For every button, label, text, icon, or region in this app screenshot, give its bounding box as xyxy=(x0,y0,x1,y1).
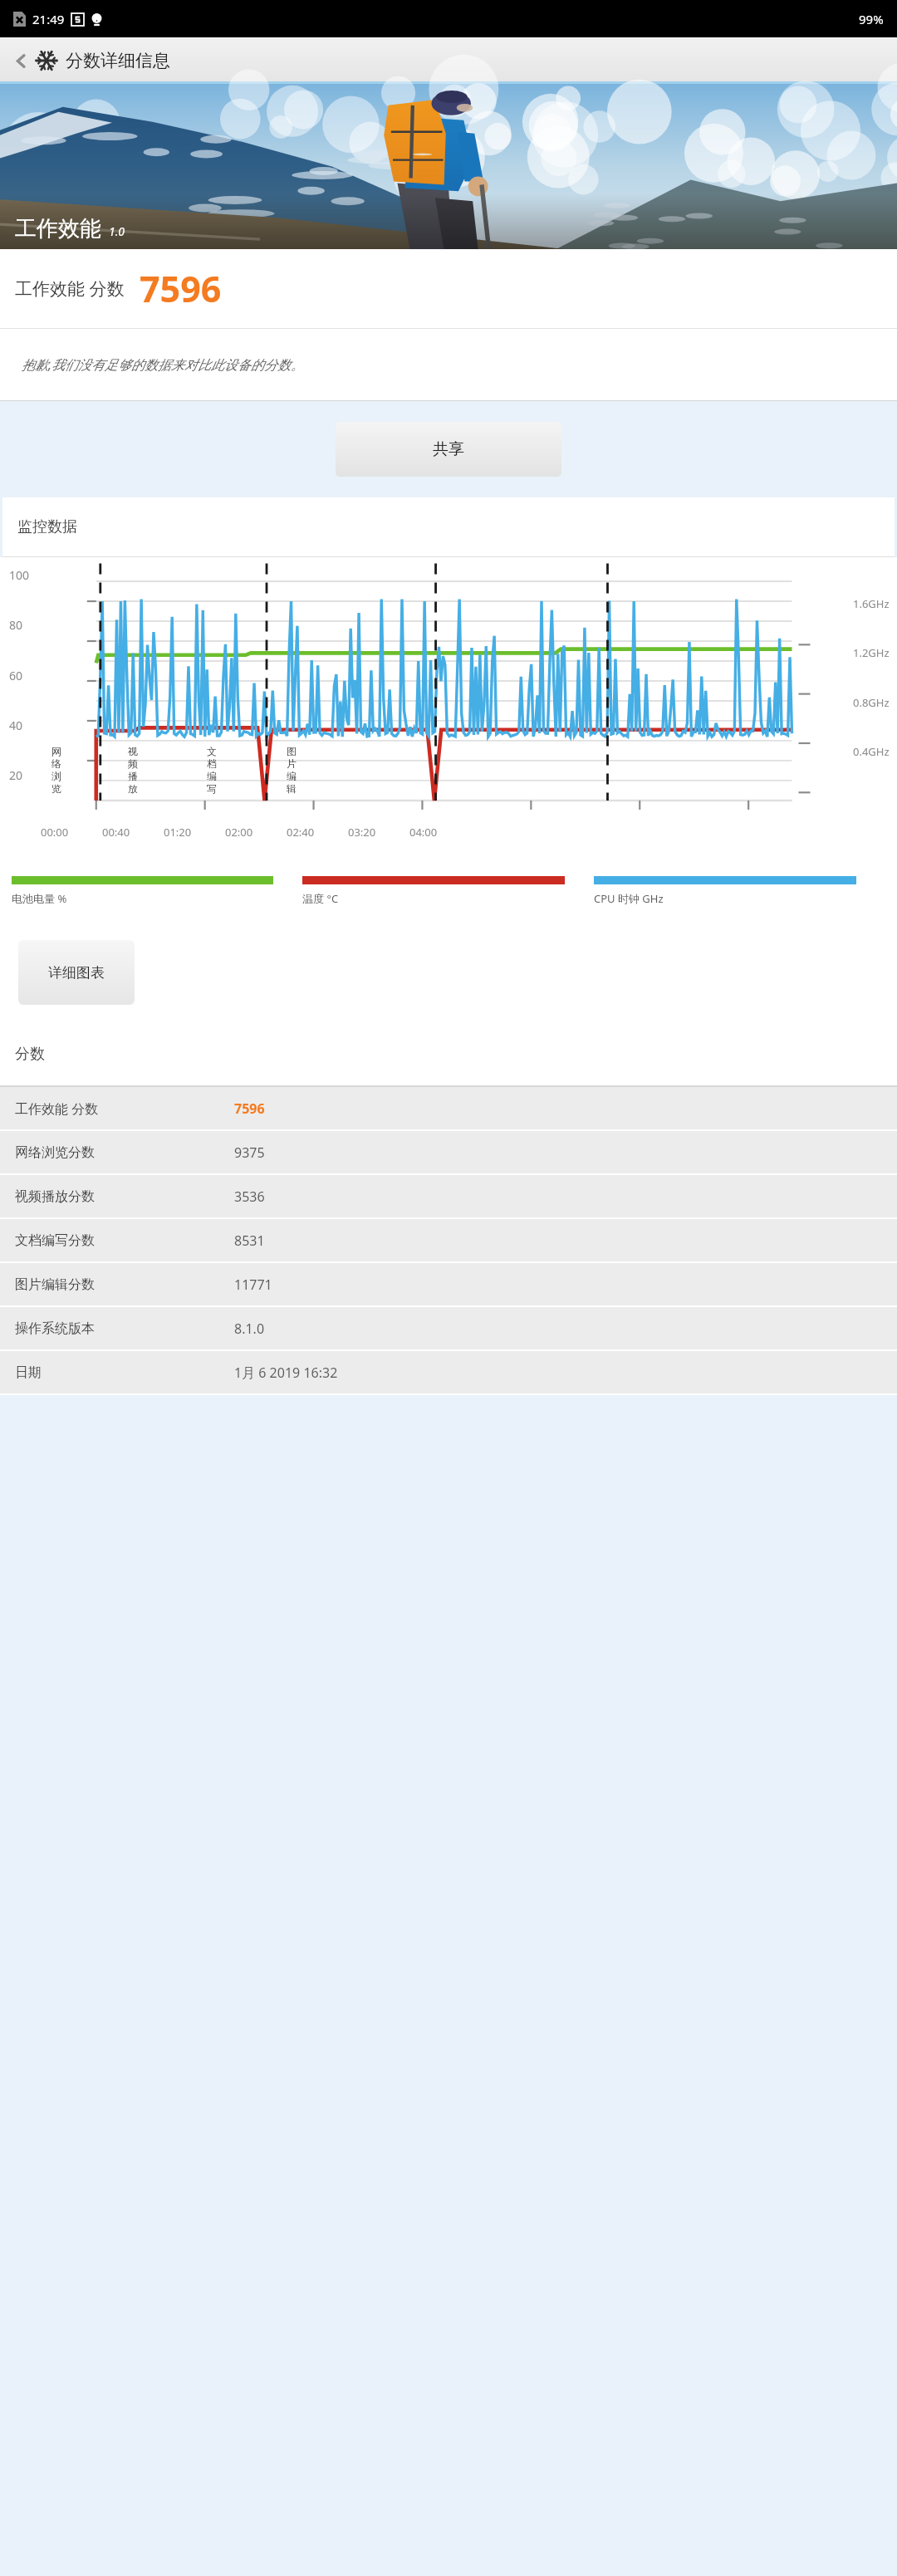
staticText: 抱歉,我们没有足够的数据来对比此设备的分数。 xyxy=(22,355,305,374)
staticText: 片 xyxy=(287,757,297,770)
staticText: 电池电量 % xyxy=(12,891,67,906)
staticText: 0.4GHz xyxy=(853,744,890,759)
staticText: 20 xyxy=(9,767,23,783)
staticText: 监控数据 xyxy=(17,517,77,536)
staticText: 00:40 xyxy=(102,825,130,840)
staticText: 视频播放分数 xyxy=(15,1188,95,1205)
staticText: 频 xyxy=(128,757,138,770)
staticText: 11771 xyxy=(234,1276,272,1294)
staticText: 日期 xyxy=(15,1364,42,1381)
staticText: 0.8GHz xyxy=(853,695,890,710)
staticText: 温度 °C xyxy=(302,891,339,906)
staticText: 8531 xyxy=(234,1232,265,1250)
staticText: 写 xyxy=(207,782,217,795)
staticText: 00:00 xyxy=(41,825,69,840)
staticText: 1.0 xyxy=(109,223,125,239)
staticText: 编 xyxy=(287,770,297,782)
staticText: 21:49 xyxy=(32,11,65,27)
button[interactable]: 操作系统版本 xyxy=(0,1307,897,1349)
staticText: 02:00 xyxy=(225,825,253,840)
staticText: 图 xyxy=(287,745,297,757)
button[interactable]: 共享 xyxy=(336,422,561,477)
staticText: 图片编辑分数 xyxy=(15,1276,95,1293)
staticText: 7596 xyxy=(234,1099,265,1118)
staticText: 7596 xyxy=(140,264,222,313)
staticText: 04:00 xyxy=(409,825,438,840)
staticText: 网 xyxy=(51,745,61,757)
staticText: 辑 xyxy=(287,782,297,795)
button[interactable]: 工作效能 分数 xyxy=(0,1087,897,1129)
staticText: 播 xyxy=(128,770,138,782)
staticText: 文 xyxy=(207,745,217,757)
staticText: 分数 xyxy=(15,1045,45,1064)
staticText: 1.6GHz xyxy=(853,596,890,611)
staticText: 编 xyxy=(207,770,217,782)
staticText: 详细图表 xyxy=(48,964,105,982)
staticText: 99% xyxy=(859,11,884,27)
staticText: 40 xyxy=(9,717,23,733)
staticText: 分数详细信息 xyxy=(66,50,170,71)
staticText: 8.1.0 xyxy=(234,1320,265,1338)
staticText: 网络浏览分数 xyxy=(15,1144,95,1161)
staticText: 共享 xyxy=(433,439,464,459)
button[interactable]: Back xyxy=(7,47,35,75)
staticText: 操作系统版本 xyxy=(15,1320,95,1337)
staticText: 放 xyxy=(128,782,138,795)
staticText: 1.2GHz xyxy=(853,645,890,660)
button[interactable]: 网络浏览分数 xyxy=(0,1131,897,1173)
button[interactable]: 视频播放分数 xyxy=(0,1175,897,1217)
button[interactable]: 详细图表 xyxy=(18,940,135,1005)
staticText: 工作效能 分数 xyxy=(15,1099,99,1118)
button[interactable]: 日期 xyxy=(0,1351,897,1393)
staticText: 60 xyxy=(9,668,23,683)
staticText: 80 xyxy=(9,617,23,633)
staticText: 03:20 xyxy=(348,825,376,840)
staticText: 络 xyxy=(51,757,61,770)
staticText: 档 xyxy=(207,757,217,770)
staticText: 览 xyxy=(51,782,61,795)
staticText: 01:20 xyxy=(164,825,192,840)
staticText: 工作效能 分数 xyxy=(15,277,125,301)
button[interactable]: 文档编写分数 xyxy=(0,1219,897,1261)
staticText: 工作效能 xyxy=(15,215,101,242)
staticText: 1月 6 2019 16:32 xyxy=(234,1364,338,1382)
button[interactable]: 图片编辑分数 xyxy=(0,1263,897,1305)
staticText: 3536 xyxy=(234,1188,265,1206)
staticText: CPU 时钟 GHz xyxy=(594,891,664,906)
staticText: 浏 xyxy=(51,770,61,782)
staticText: 视 xyxy=(128,745,138,757)
staticText: 100 xyxy=(9,567,30,583)
staticText: 02:40 xyxy=(287,825,315,840)
staticText: 9375 xyxy=(234,1144,265,1162)
staticText: 文档编写分数 xyxy=(15,1232,95,1249)
